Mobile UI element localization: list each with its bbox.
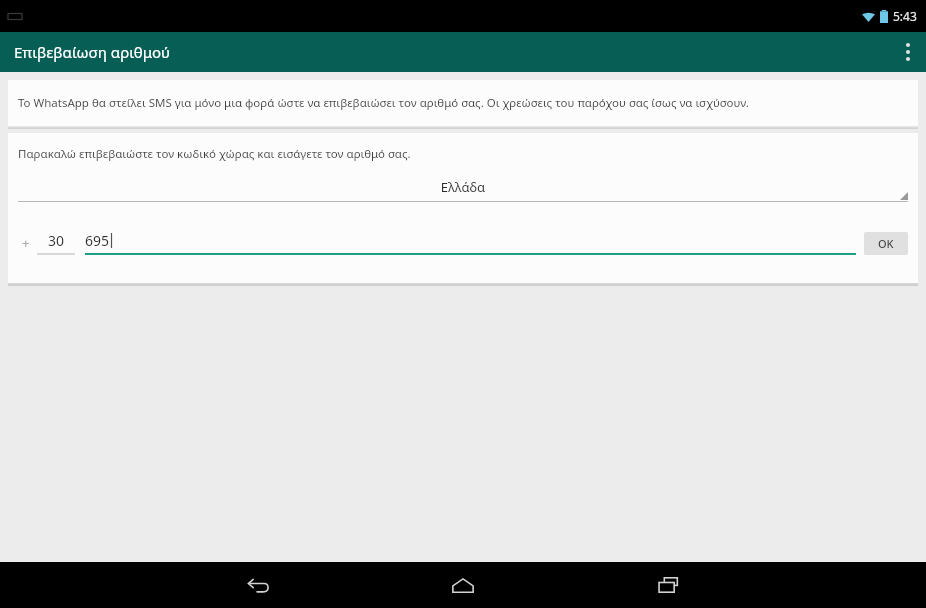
staticText: 695 xyxy=(85,231,110,250)
button[interactable]: Back xyxy=(230,562,286,608)
button[interactable]: Home xyxy=(435,562,491,608)
button[interactable]: 695 xyxy=(85,231,856,255)
staticText: OK xyxy=(878,236,894,251)
button[interactable]: Ελλάδα xyxy=(18,178,908,209)
button[interactable]: 30 xyxy=(37,231,75,255)
staticText: 30 xyxy=(37,231,75,250)
button[interactable]: OK xyxy=(864,232,908,255)
button[interactable]: More options xyxy=(890,32,926,72)
staticText: Ελλάδα xyxy=(18,178,908,196)
staticText: Επιβεβαίωση αριθμού xyxy=(14,42,171,62)
staticText: Παρακαλώ επιβεβαιώστε τον κωδικό χώρας κ… xyxy=(18,146,411,162)
staticText: Το WhatsApp θα στείλει SMS για μόνο μια … xyxy=(18,95,908,111)
button[interactable]: Recent apps xyxy=(640,562,696,608)
staticText: 5:43 xyxy=(893,8,917,24)
staticText: + xyxy=(22,234,30,252)
